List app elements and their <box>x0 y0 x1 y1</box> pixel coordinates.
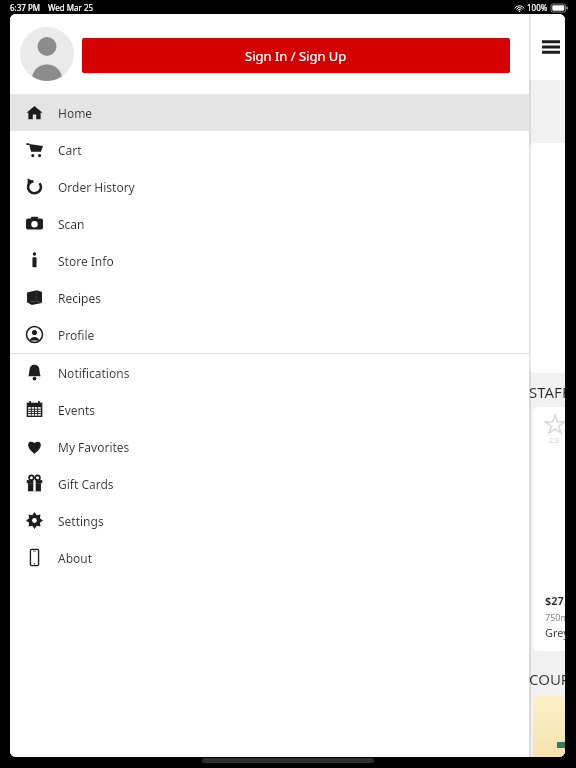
button[interactable]: Recipes <box>10 279 529 316</box>
staticText: STAFF PICKS <box>529 382 565 402</box>
button[interactable]: Gift Cards <box>10 465 529 502</box>
staticText: 750ml <box>545 611 565 623</box>
staticText: Settings <box>58 513 104 529</box>
staticText: 100% <box>527 2 548 13</box>
staticText: 2.9 <box>549 436 559 446</box>
staticText: Events <box>58 402 96 418</box>
button[interactable]: Menu <box>537 33 565 61</box>
staticText: COUPONS <box>529 669 565 689</box>
staticText: My Favorites <box>58 439 130 455</box>
button[interactable]: Home <box>10 94 529 131</box>
button[interactable]: My Favorites <box>10 428 529 465</box>
button[interactable]: Scan <box>10 205 529 242</box>
staticText: Order History <box>58 179 135 195</box>
staticText: Store Info <box>58 253 114 269</box>
button[interactable]: About <box>10 539 529 576</box>
button[interactable]: Notifications <box>10 354 529 391</box>
button[interactable]: Settings <box>10 502 529 539</box>
button[interactable]: Store Info <box>10 242 529 279</box>
staticText: $27.99 <box>545 593 565 608</box>
staticText: Recipes <box>58 290 101 306</box>
staticText: Home <box>58 105 93 121</box>
staticText: Notifications <box>58 365 130 381</box>
button[interactable]: Order History <box>10 168 529 205</box>
staticText: Grey Goose <box>545 625 565 640</box>
button[interactable]: 2.9 <box>533 407 565 651</box>
button[interactable]: Profile <box>10 316 529 353</box>
button[interactable] <box>529 143 565 373</box>
staticText: About <box>58 550 93 566</box>
staticText: Gift Cards <box>58 476 114 492</box>
staticText: Cart <box>58 142 82 158</box>
staticText: Sign In / Sign Up <box>245 47 347 65</box>
button[interactable] <box>533 696 565 757</box>
staticText: Wed Mar 25 <box>48 2 94 13</box>
staticText: 6:37 PM <box>10 2 41 13</box>
button[interactable]: Events <box>10 391 529 428</box>
button[interactable]: Sign In / Sign Up <box>82 38 510 73</box>
button[interactable]: Cart <box>10 131 529 168</box>
staticText: Profile <box>58 327 95 343</box>
button[interactable]: Profile picture <box>20 27 74 81</box>
staticText: Scan <box>58 216 85 232</box>
